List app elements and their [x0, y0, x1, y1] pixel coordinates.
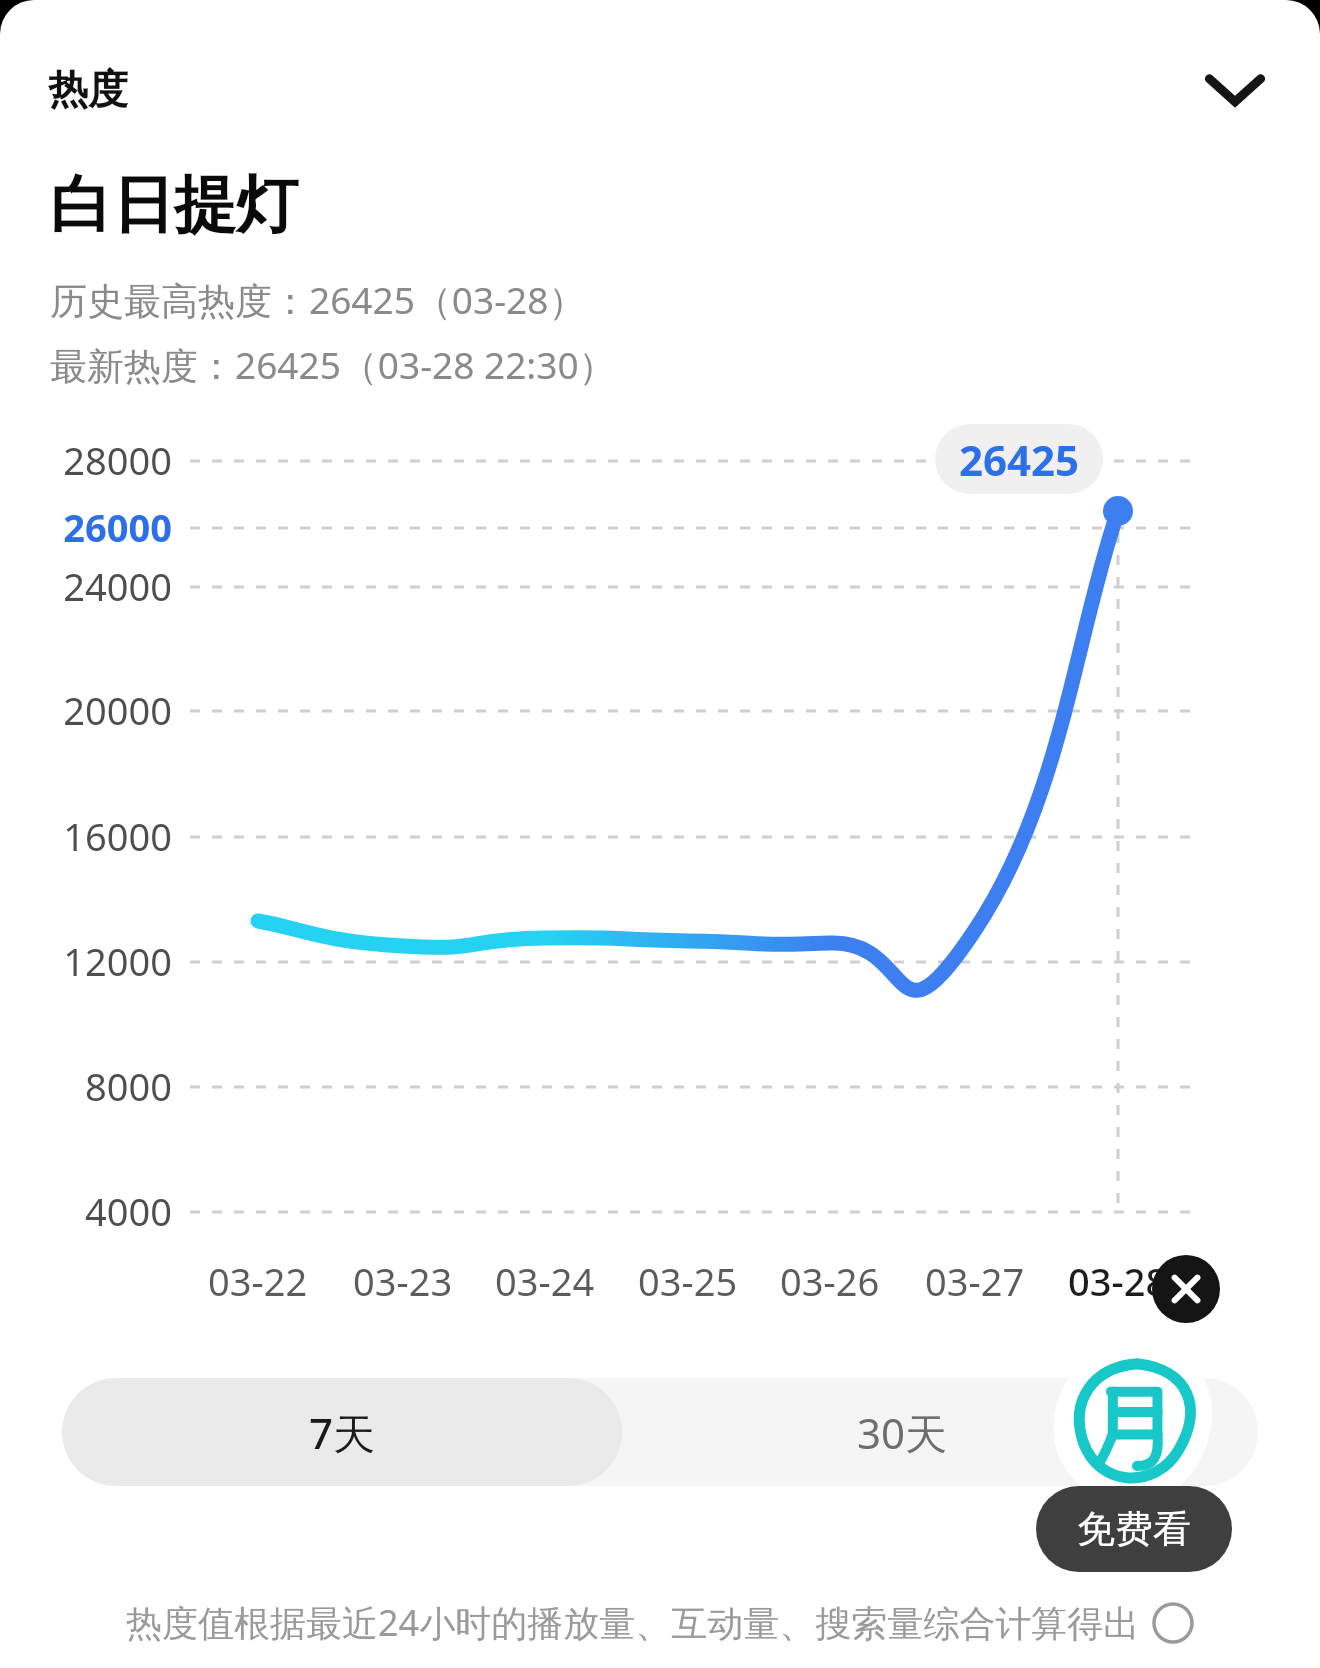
staticText: 8000	[85, 1060, 172, 1112]
button[interactable]: 热度值根据最近24小时的播放量、互动量、搜索量综合计算得出	[0, 1598, 1320, 1647]
staticText: 26425	[959, 431, 1080, 488]
staticText: 12000	[63, 935, 172, 987]
staticText: 03-22	[208, 1255, 308, 1307]
staticText: 03-25	[638, 1255, 738, 1307]
staticText: 03-28	[1068, 1255, 1168, 1307]
staticText: 03-23	[353, 1255, 453, 1307]
staticText: 热度	[48, 64, 128, 114]
staticText: 7天	[309, 1404, 376, 1461]
staticText: 28000	[63, 434, 172, 486]
staticText: 热度值根据最近24小时的播放量、互动量、搜索量综合计算得出	[126, 1598, 1140, 1647]
staticText: 历史最高热度：26425（03-28）	[50, 274, 586, 325]
button[interactable]: 7天	[62, 1378, 622, 1486]
staticText: 26000	[63, 501, 172, 553]
staticText: 16000	[63, 810, 172, 862]
staticText: 24000	[63, 560, 172, 612]
staticText: 20000	[63, 684, 172, 736]
button[interactable]: 26425	[935, 424, 1103, 494]
button[interactable]: 收起	[1180, 34, 1290, 144]
staticText: 03-26	[780, 1255, 880, 1307]
staticText: 30天	[857, 1404, 948, 1461]
staticText: 03-24	[495, 1255, 595, 1307]
staticText: 4000	[85, 1185, 172, 1237]
staticText: 免费看	[1077, 1505, 1191, 1553]
staticText: 最新热度：26425（03-28 22:30）	[50, 339, 616, 390]
button[interactable]: 关闭	[1152, 1255, 1220, 1323]
button[interactable]: 免费看	[1036, 1334, 1236, 1634]
staticText: 白日提灯	[50, 166, 298, 244]
button[interactable]: 30天	[622, 1378, 1182, 1486]
staticText: 03-27	[925, 1255, 1025, 1307]
